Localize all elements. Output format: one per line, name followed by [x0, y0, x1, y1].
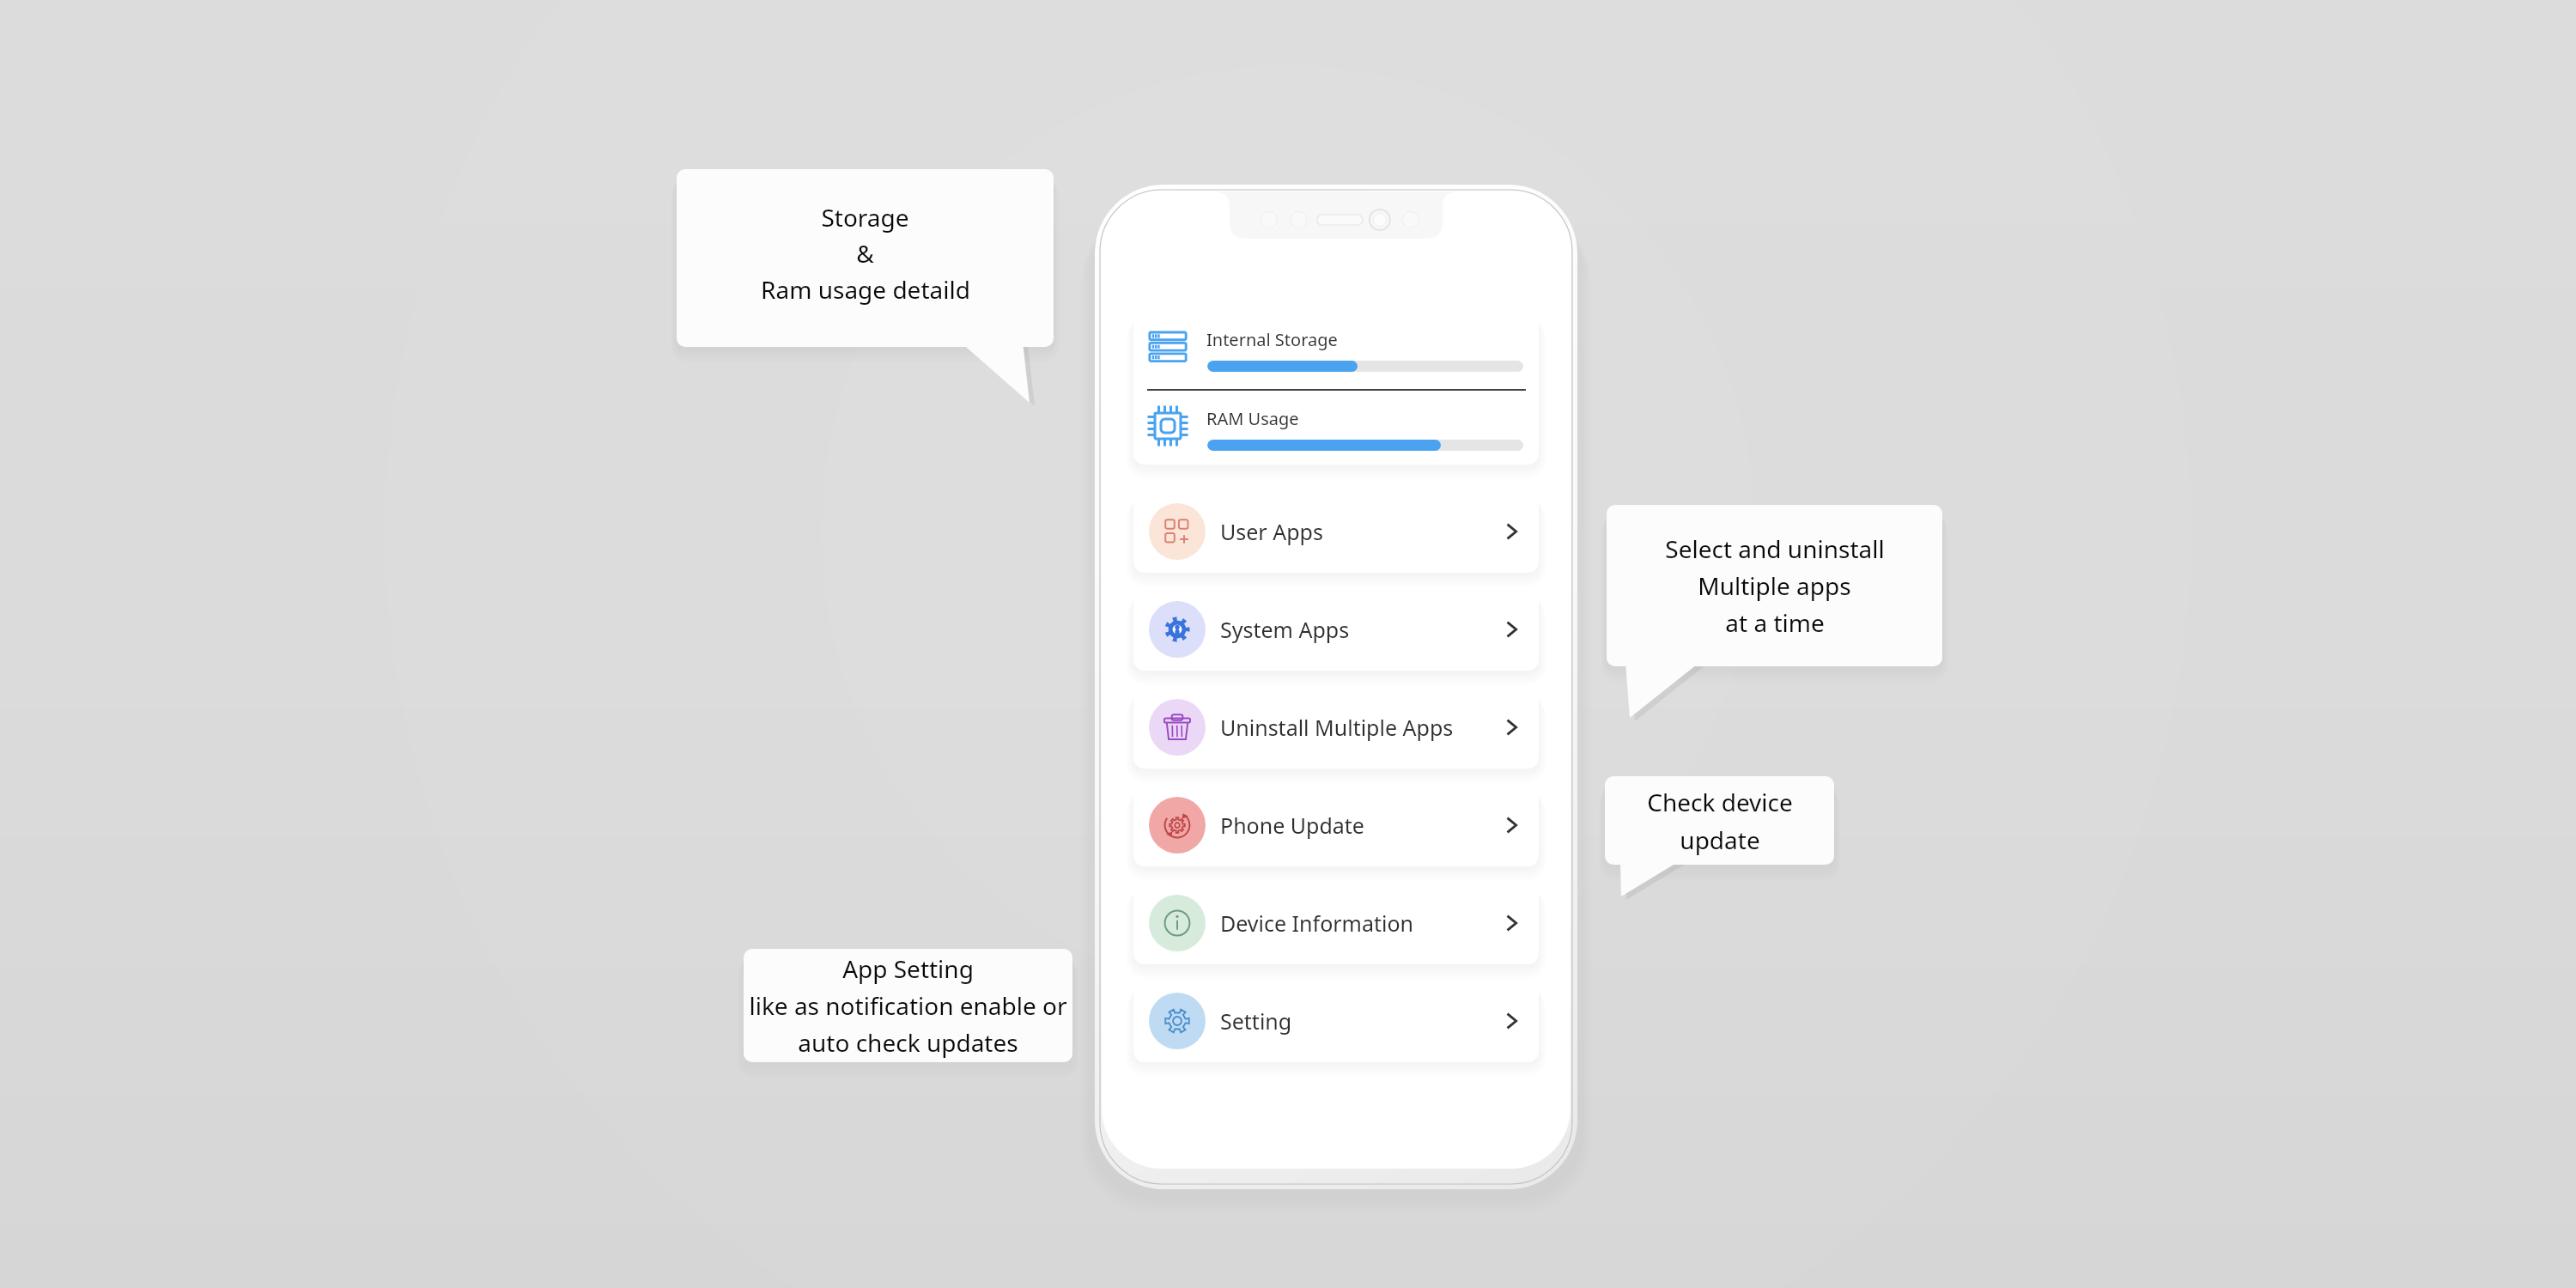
button[interactable]: Setting — [1133, 980, 1539, 1062]
staticText: & — [856, 237, 874, 270]
other: Open Device Information — [1499, 911, 1523, 935]
button[interactable]: Internal Storage — [1133, 310, 1539, 465]
staticText: Internal Storage — [1206, 328, 1338, 351]
other: Open User Apps — [1499, 519, 1523, 544]
staticText: Phone Update — [1220, 811, 1364, 840]
staticText: Check device — [1647, 786, 1793, 818]
staticText: Setting — [1220, 1006, 1292, 1036]
staticText: User Apps — [1220, 517, 1323, 546]
button[interactable]: Phone Update — [1133, 784, 1539, 866]
staticText: App Setting — [842, 952, 974, 985]
other: Open System Apps — [1499, 617, 1523, 641]
staticText: Device Information — [1220, 908, 1414, 938]
staticText: auto check updates — [798, 1026, 1018, 1059]
staticText: System Apps — [1220, 615, 1350, 644]
other: Open Uninstall Multiple Apps — [1499, 715, 1523, 739]
other: Open Setting — [1499, 1009, 1523, 1033]
staticText: update — [1680, 823, 1760, 856]
staticText: Uninstall Multiple Apps — [1220, 713, 1454, 742]
button[interactable]: Device Information — [1133, 882, 1539, 964]
button[interactable]: Uninstall Multiple Apps — [1133, 686, 1539, 769]
staticText: Ram usage detaild — [761, 273, 970, 306]
button[interactable]: User Apps — [1133, 490, 1539, 573]
staticText: at a time — [1725, 606, 1825, 639]
other: Open Phone Update — [1499, 813, 1523, 837]
button[interactable]: System Apps — [1133, 588, 1539, 671]
staticText: Storage — [821, 201, 909, 234]
staticText: like as notification enable or — [749, 989, 1067, 1022]
staticText: Multiple apps — [1698, 569, 1851, 602]
staticText: RAM Usage — [1206, 407, 1299, 430]
staticText: Select and uninstall — [1665, 532, 1885, 565]
